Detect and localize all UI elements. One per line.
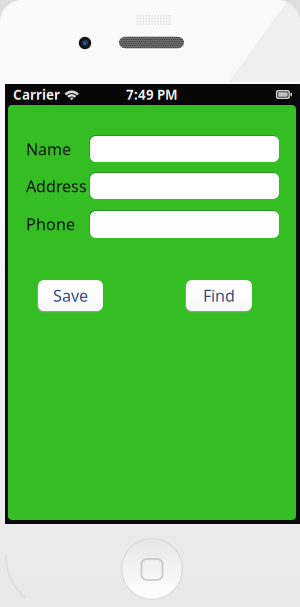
staticText: Save (53, 285, 88, 306)
staticText: Carrier (13, 86, 60, 103)
button[interactable]: Find (186, 280, 252, 311)
staticText: Phone (26, 213, 75, 235)
staticText: Address (26, 175, 87, 197)
staticText: Find (203, 285, 235, 306)
button[interactable]: Save (38, 280, 103, 311)
staticText: Name (26, 138, 71, 160)
staticText: 7:49 PM (126, 86, 178, 103)
